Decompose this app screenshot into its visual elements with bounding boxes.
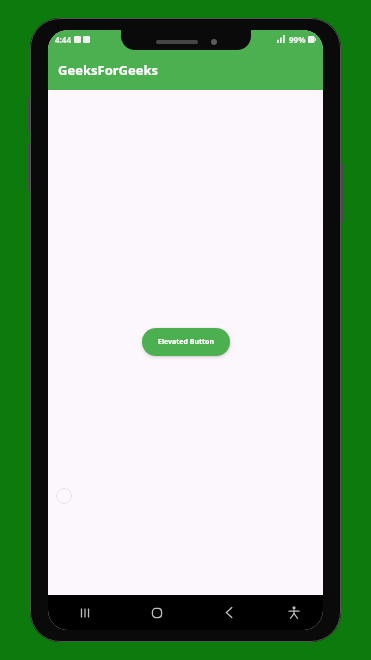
staticText: GeeksForGeeks	[58, 61, 159, 79]
staticText: Elevated Button	[158, 337, 214, 347]
button[interactable]: Recent apps	[48, 595, 121, 630]
button[interactable]: Back	[193, 595, 265, 630]
button[interactable]: Home	[121, 595, 193, 630]
button[interactable]: Accessibility	[265, 595, 323, 630]
button[interactable]: Elevated Button	[142, 328, 230, 356]
staticText: 4:44	[55, 34, 71, 45]
staticText: 99%	[289, 34, 306, 45]
